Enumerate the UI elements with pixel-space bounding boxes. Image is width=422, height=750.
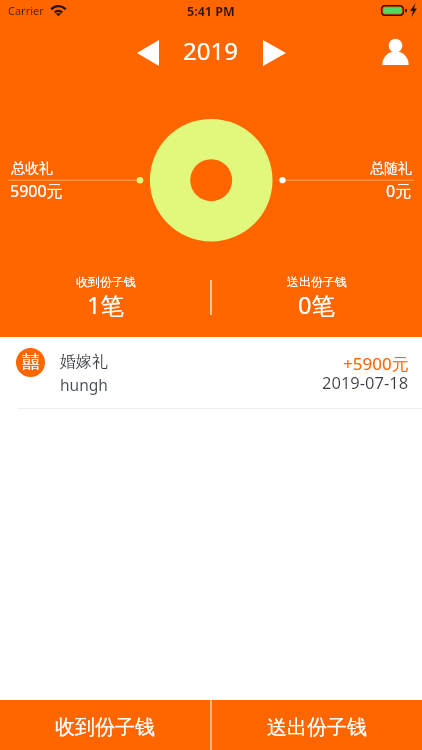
- button[interactable]: Previous year: [129, 37, 166, 69]
- staticText: hungh: [60, 374, 108, 395]
- staticText: 0笔: [298, 289, 335, 321]
- staticText: +5900元: [343, 352, 409, 375]
- staticText: 收到份子钱: [76, 274, 136, 289]
- staticText: Carrier: [8, 3, 44, 18]
- staticText: 总随礼: [370, 160, 412, 178]
- button[interactable]: 送出份子钱: [212, 700, 422, 750]
- button[interactable]: Profile: [376, 33, 414, 71]
- staticText: 囍: [22, 351, 40, 374]
- staticText: 送出份子钱: [267, 715, 367, 740]
- staticText: 总收礼: [11, 160, 53, 178]
- staticText: 1笔: [87, 289, 124, 321]
- button[interactable]: 收到份子钱: [0, 700, 210, 750]
- staticText: 2019: [183, 34, 238, 67]
- staticText: 送出份子钱: [287, 274, 347, 289]
- button[interactable]: 囍: [0, 337, 422, 409]
- staticText: 收到份子钱: [55, 715, 155, 740]
- staticText: 婚嫁礼: [60, 352, 108, 372]
- staticText: 5:41 PM: [187, 3, 235, 20]
- button[interactable]: Next year: [256, 37, 293, 69]
- staticText: 0元: [386, 180, 412, 202]
- staticText: 2019-07-18: [322, 371, 409, 393]
- staticText: 5900元: [10, 180, 63, 202]
